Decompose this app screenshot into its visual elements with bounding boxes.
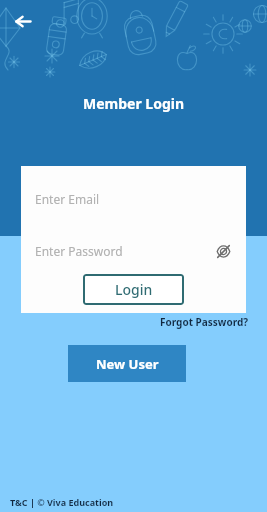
button[interactable]: Enter Email [21,184,246,214]
button[interactable]: T&C | © Viva Education [10,496,114,508]
button[interactable]: Back [10,8,36,34]
button[interactable]: New User [68,345,186,382]
staticText: Member Login [0,94,267,113]
button[interactable]: Forgot Password? [160,315,249,329]
button[interactable]: Enter Password [21,236,246,266]
staticText: Enter Email [35,191,100,207]
button[interactable]: Login [83,274,184,305]
staticText: Forgot Password? [160,315,249,329]
staticText: Login [115,280,153,299]
staticText: T&C | © Viva Education [10,496,114,508]
button[interactable]: Show password [212,240,234,262]
staticText: New User [96,355,159,373]
staticText: Enter Password [35,243,212,259]
